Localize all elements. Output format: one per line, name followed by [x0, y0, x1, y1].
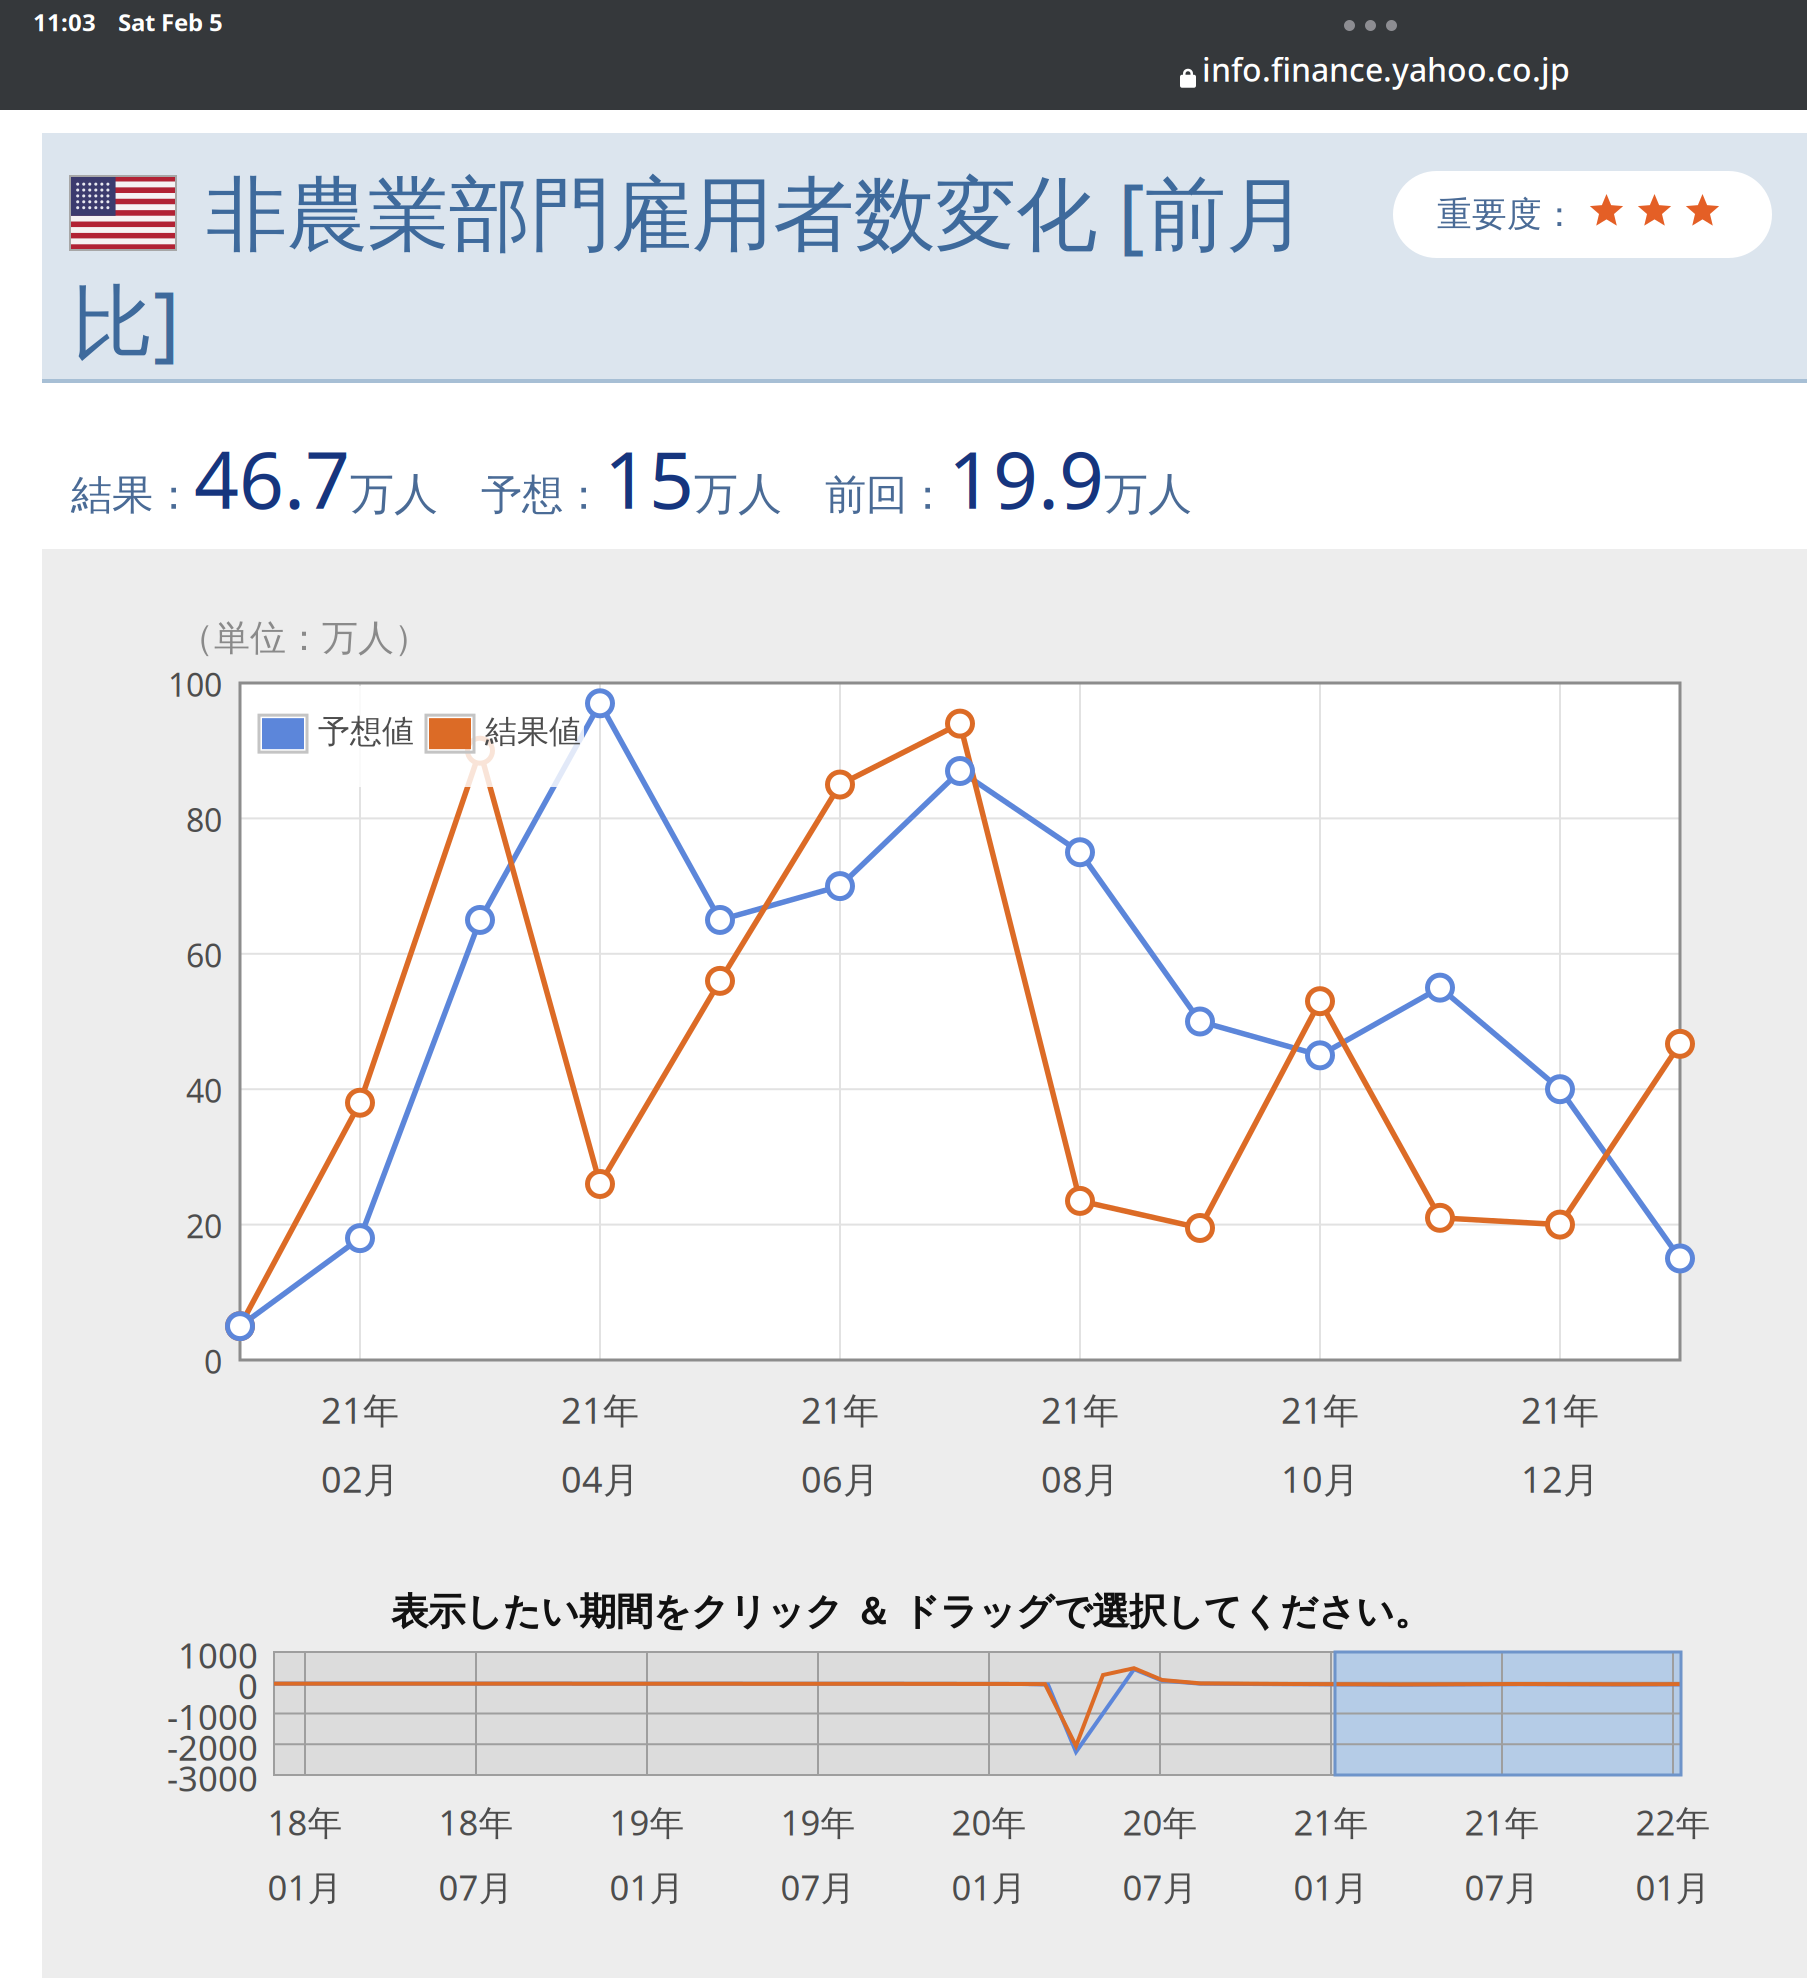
- staticText: 40: [186, 1069, 222, 1112]
- staticText: 07月: [780, 1864, 855, 1910]
- staticText: 予想：: [481, 470, 604, 520]
- staticText: 21年: [561, 1386, 639, 1434]
- button[interactable]: Tab overview: [0, 0, 1807, 1986]
- staticText: 02月: [321, 1455, 399, 1503]
- staticText: 60: [186, 934, 222, 976]
- staticText: 08月: [1041, 1455, 1119, 1503]
- staticText: -3000: [167, 1755, 258, 1801]
- staticText: 01月: [267, 1864, 342, 1910]
- staticText: 20年: [951, 1799, 1026, 1845]
- staticText: 万人: [694, 467, 782, 521]
- staticText: 21年: [1521, 1386, 1599, 1434]
- staticText: 21年: [801, 1386, 879, 1434]
- staticText: 18年: [438, 1799, 513, 1845]
- staticText: 非農業部門雇用者数変化 [前月: [206, 158, 1307, 266]
- staticText: 21年: [1464, 1799, 1539, 1845]
- staticText: 21年: [1281, 1386, 1359, 1434]
- staticText: 21年: [1293, 1799, 1368, 1845]
- staticText: 06月: [801, 1455, 879, 1503]
- staticText: Sat Feb 5: [118, 6, 223, 38]
- staticText: 万人: [350, 467, 438, 521]
- staticText: 46.7: [194, 426, 350, 530]
- staticText: 結果値: [485, 712, 581, 751]
- staticText: -2000: [167, 1724, 258, 1770]
- staticText: 19年: [609, 1799, 684, 1845]
- staticText: 01月: [609, 1864, 684, 1910]
- staticText: 比]: [72, 266, 180, 374]
- staticText: 20年: [1122, 1799, 1197, 1845]
- staticText: 20: [186, 1205, 222, 1247]
- button[interactable]: Address bar: info.finance.yahoo.co.jp: [0, 0, 1807, 1986]
- staticText: 01月: [1635, 1864, 1710, 1910]
- staticText: 12月: [1521, 1455, 1599, 1503]
- staticText: 19.9: [948, 426, 1104, 530]
- staticText: 07月: [438, 1864, 513, 1910]
- staticText: （単位：万人）: [178, 616, 430, 660]
- staticText: 1000: [178, 1632, 258, 1678]
- staticText: 0: [238, 1663, 258, 1709]
- button[interactable]: 重要度：: [0, 0, 1807, 1986]
- staticText: 15: [604, 426, 694, 530]
- staticText: 10月: [1281, 1455, 1359, 1503]
- staticText: -1000: [167, 1693, 258, 1739]
- staticText: 100: [168, 663, 222, 705]
- staticText: 22年: [1635, 1799, 1710, 1845]
- staticText: 01月: [951, 1864, 1026, 1910]
- staticText: 21年: [321, 1386, 399, 1434]
- staticText: 19年: [780, 1799, 855, 1845]
- staticText: 21年: [1041, 1386, 1119, 1434]
- staticText: 18年: [267, 1799, 342, 1845]
- staticText: 表示したい期間をクリック ＆ ドラッグで選択してください。: [391, 1589, 1431, 1635]
- staticText: 01月: [1293, 1864, 1368, 1910]
- staticText: 予想値: [318, 712, 414, 751]
- staticText: 07月: [1122, 1864, 1197, 1910]
- staticText: 重要度：: [1437, 193, 1577, 236]
- staticText: info.finance.yahoo.co.jp: [1202, 48, 1570, 90]
- staticText: 前回：: [825, 470, 948, 520]
- staticText: 11:03: [33, 6, 96, 38]
- staticText: 結果：: [71, 470, 194, 520]
- staticText: 0: [204, 1340, 222, 1382]
- staticText: 万人: [1104, 467, 1192, 521]
- staticText: 07月: [1464, 1864, 1539, 1910]
- staticText: 04月: [561, 1455, 639, 1503]
- staticText: 80: [186, 798, 222, 841]
